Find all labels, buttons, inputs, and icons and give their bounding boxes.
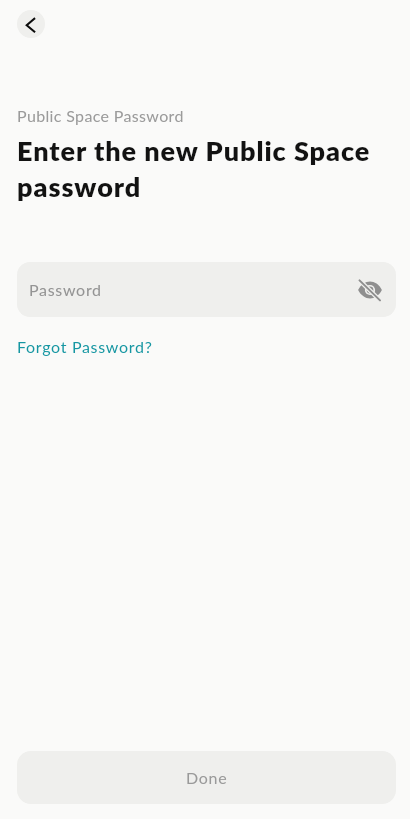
staticText: Done <box>186 768 228 787</box>
staticText: Enter the new Public Space password <box>17 134 410 202</box>
staticText: Public Space Password <box>17 106 184 125</box>
button[interactable]: Show password <box>355 275 385 305</box>
button[interactable]: Password <box>17 262 396 317</box>
staticText: Password <box>29 280 102 299</box>
button[interactable]: Forgot Password? <box>17 337 153 356</box>
staticText: Forgot Password? <box>17 337 153 356</box>
button[interactable]: Done <box>17 751 396 804</box>
button[interactable]: Back <box>17 10 45 38</box>
